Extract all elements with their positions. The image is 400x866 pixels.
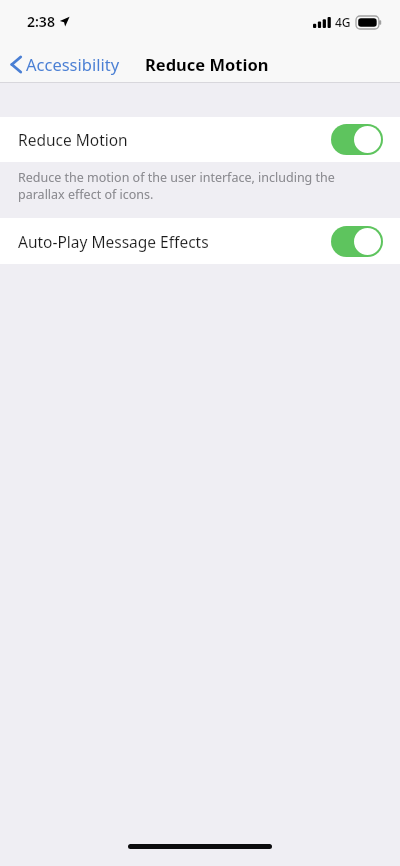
staticText: 2:38 [27,12,55,31]
staticText: Accessibility [26,53,120,75]
button[interactable]: Auto-Play Message Effects [0,218,400,264]
button[interactable]: Accessibility [0,49,128,79]
button[interactable]: Reduce Motion [0,117,400,162]
button[interactable]: Toggle on [331,124,383,155]
staticText: 4G [335,14,351,30]
staticText: Reduce the motion of the user interface,… [18,169,348,202]
staticText: Reduce Motion [145,53,269,75]
button[interactable]: Toggle on [331,226,383,257]
staticText: Reduce Motion [18,129,128,150]
staticText: Auto-Play Message Effects [18,231,209,252]
